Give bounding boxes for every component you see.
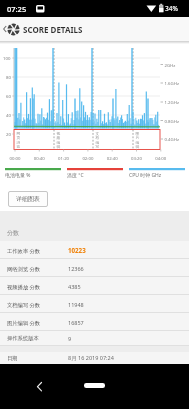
staticText: 工作效率 分数	[7, 247, 41, 254]
button[interactable]	[0, 17, 10, 41]
staticText: 16857	[68, 319, 84, 326]
staticText: 9	[68, 335, 72, 342]
button[interactable]	[84, 383, 105, 388]
staticText: 详细图表	[16, 195, 40, 203]
button[interactable]: 详细图表	[8, 191, 48, 207]
staticText: 分数	[7, 229, 19, 237]
staticText: 11948	[68, 301, 84, 308]
button[interactable]: 操作系统版本	[0, 331, 189, 346]
staticText: 操作系统版本	[7, 335, 39, 342]
button[interactable]: 日期	[0, 352, 189, 364]
staticText: 视频播放 分数	[7, 283, 41, 290]
staticText: 4385	[68, 283, 81, 290]
staticText: 12366	[68, 265, 84, 272]
button[interactable]: 文档编写 分数	[0, 295, 189, 313]
button[interactable]: 图片编辑 分数	[0, 313, 189, 331]
staticText: 10223	[68, 246, 86, 254]
staticText: 网络浏览 分数	[7, 265, 41, 272]
staticText: 07:25	[7, 4, 27, 14]
staticText: 图片编辑 分数	[7, 319, 41, 326]
button[interactable]: 网络浏览 分数	[0, 259, 189, 277]
staticText: 34%	[165, 4, 178, 13]
staticText: 日期	[7, 355, 18, 362]
button[interactable]: 工作效率 分数	[0, 241, 189, 259]
staticText: 8月 16 2019 07:24	[68, 354, 114, 362]
staticText: SCORE DETAILS	[23, 24, 83, 35]
staticText: 文档编写 分数	[7, 301, 41, 308]
button[interactable]	[30, 377, 46, 397]
button[interactable]: 视频播放 分数	[0, 277, 189, 295]
